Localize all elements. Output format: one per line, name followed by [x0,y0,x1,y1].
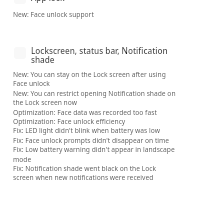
staticText: the Lock screen now [13,98,77,107]
staticText: Fix: Notification shade went black on th… [13,164,157,173]
staticText: Fix: Low battery warning didn't appear i… [13,145,175,154]
staticText: Optimization: Face data was recorded too… [13,108,157,117]
staticText: Fix: Face unlock prompts didn't disappea… [13,136,170,145]
staticText: mode [13,155,32,164]
staticText: Optimization: Face unlock efficiency [13,117,126,126]
staticText: New: Face unlock support [13,10,94,19]
button[interactable]: Lockscreen category [0,43,200,65]
staticText: screen when new notifications were recei… [13,173,154,182]
staticText: Face unlock [13,79,50,88]
staticText: Fix: LED light didn't blink when battery… [13,126,160,135]
button[interactable]: App lock [0,0,200,14]
staticText: Lockscreen, status bar, Notification sha… [31,45,171,65]
staticText: New: You can restrict opening Notificati… [13,89,176,98]
staticText: New: You can stay on the Lock screen aft… [13,70,166,79]
staticText: App lock [31,0,65,3]
